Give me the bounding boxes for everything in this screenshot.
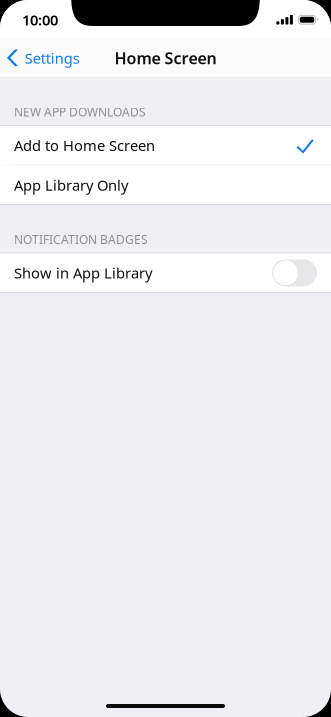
staticText: Home Screen (114, 47, 216, 69)
staticText: 10:00 (22, 10, 58, 29)
staticText: Add to Home Screen (14, 136, 155, 155)
button[interactable]: Add to Home Screen (0, 126, 331, 165)
button[interactable]: App Library Only (0, 165, 331, 204)
staticText: Show in App Library (14, 263, 152, 283)
button[interactable]: Show in App Library (0, 253, 331, 292)
staticText: NEW APP DOWNLOADS (14, 104, 146, 120)
staticText: App Library Only (14, 175, 128, 195)
staticText: NOTIFICATION BADGES (14, 231, 148, 247)
button[interactable]: Settings (0, 38, 90, 77)
staticText: Settings (25, 48, 80, 68)
